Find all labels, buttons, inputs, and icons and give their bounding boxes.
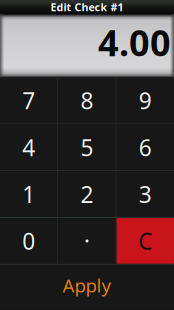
button[interactable]: 1	[0, 171, 57, 217]
button[interactable]: 5	[58, 124, 116, 170]
staticText: 4.00	[98, 18, 171, 66]
staticText: 9	[139, 85, 152, 116]
button[interactable]: 9	[117, 78, 174, 123]
button[interactable]: 7	[0, 78, 57, 123]
staticText: 2	[80, 179, 93, 209]
staticText: 8	[80, 85, 93, 116]
button[interactable]: 4	[0, 124, 57, 170]
button[interactable]: Clear	[117, 218, 174, 264]
button[interactable]: Decimal point	[58, 218, 116, 264]
button[interactable]: Apply	[0, 265, 174, 310]
button[interactable]: 3	[117, 171, 174, 217]
button[interactable]: 6	[117, 124, 174, 170]
staticText: 0	[22, 226, 35, 256]
staticText: Edit Check #1	[50, 0, 123, 14]
button[interactable]: 0	[0, 218, 57, 264]
staticText: 4	[22, 132, 35, 162]
staticText: 1	[22, 179, 35, 209]
staticText: Apply	[62, 273, 111, 298]
staticText: 3	[139, 179, 152, 209]
staticText: C	[138, 226, 152, 256]
button[interactable]: 8	[58, 78, 116, 123]
staticText: 7	[22, 85, 35, 116]
button[interactable]: 2	[58, 171, 116, 217]
staticText: 5	[80, 132, 93, 162]
staticText: 6	[139, 132, 152, 162]
